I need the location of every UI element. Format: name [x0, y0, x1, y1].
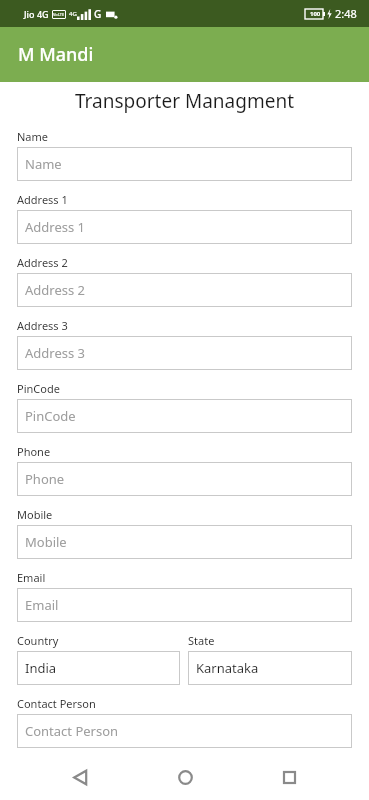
button[interactable]: Back	[56, 755, 104, 800]
button[interactable]: Karnataka	[188, 651, 352, 685]
staticText: Karnataka	[196, 659, 259, 677]
staticText: Address 3	[25, 344, 86, 362]
button[interactable]: Contact Person	[17, 714, 352, 748]
button[interactable]: Mobile	[17, 525, 352, 559]
staticText: Address 1	[17, 192, 68, 207]
staticText: Country	[17, 633, 59, 648]
staticText: Mobile	[17, 507, 53, 522]
button[interactable]: India	[17, 651, 180, 685]
staticText: Address 1	[25, 218, 86, 236]
button[interactable]: Phone	[17, 462, 352, 496]
staticText: 100	[310, 10, 321, 18]
staticText: PinCode	[17, 381, 60, 396]
staticText: Address 3	[17, 318, 68, 333]
staticText: State	[188, 633, 215, 648]
staticText: G	[94, 7, 102, 21]
staticText: 4G	[69, 10, 77, 18]
staticText: Email	[25, 596, 59, 614]
staticText: Name	[17, 129, 49, 144]
staticText: Email	[17, 570, 46, 585]
staticText: Phone	[25, 470, 65, 488]
staticText: PinCode	[25, 407, 76, 425]
button[interactable]: Recents	[265, 755, 313, 800]
staticText: Transporter Managment	[0, 88, 369, 114]
staticText: India	[25, 659, 57, 677]
staticText: Name	[25, 155, 62, 173]
button[interactable]: Home	[161, 755, 209, 800]
button[interactable]: Name	[17, 147, 352, 181]
staticText: Jio 4G	[24, 8, 49, 20]
button[interactable]: M Mandi	[0, 27, 369, 82]
staticText: Contact Person	[25, 722, 119, 740]
button[interactable]: Email	[17, 588, 352, 622]
button[interactable]: Address 3	[17, 336, 352, 370]
staticText: M Mandi	[18, 42, 94, 67]
staticText: Contact Person	[17, 696, 96, 711]
button[interactable]: Address 1	[17, 210, 352, 244]
button[interactable]: PinCode	[17, 399, 352, 433]
staticText: Mobile	[25, 533, 67, 551]
staticText: Address 2	[17, 255, 68, 270]
staticText: Address 2	[25, 281, 86, 299]
staticText: VoLTE	[53, 12, 65, 17]
staticText: Phone	[17, 444, 51, 459]
staticText: 2:48	[335, 6, 357, 21]
button[interactable]: Address 2	[17, 273, 352, 307]
